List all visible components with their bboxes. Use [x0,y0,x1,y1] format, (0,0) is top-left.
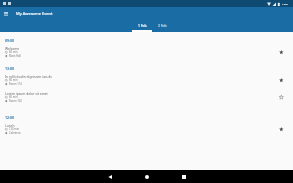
staticText: In sollicitudin dignissim iaculis [5,74,52,78]
button[interactable] [277,76,286,85]
staticText: Main Hall [9,54,21,58]
button[interactable] [277,48,286,57]
staticText: 2 Feb [158,23,167,28]
staticText: 60 min [9,50,18,54]
staticText: Lunch [5,123,15,127]
button[interactable] [277,125,286,134]
staticText: 1 Feb [138,23,147,28]
staticText: 09:00 [5,38,14,43]
button[interactable]: 2 Feb [152,19,172,32]
staticText: 60 min [9,95,18,99]
staticText: 14:01 [282,2,289,5]
staticText: My Awesome Event [16,11,53,16]
staticText: Room 102 [9,99,22,103]
button[interactable]: 1 Feb [132,19,152,32]
staticText: 12:00 [5,115,14,120]
staticText: 120 min [9,127,20,131]
button[interactable]: Lorem ipsum dolor sit amet [0,88,293,105]
staticText: Lorem ipsum dolor sit amet [5,91,48,95]
button[interactable]: Lunch [0,120,293,137]
button[interactable] [99,170,121,183]
staticText: Welcome [5,46,20,50]
staticText: 60 min [9,78,18,82]
button[interactable]: Welcome [0,43,293,60]
staticText: Cafeteria [9,131,21,135]
staticText: Room 114 [9,82,22,86]
staticText: 13:00 [5,66,14,71]
button[interactable] [0,7,12,19]
button[interactable] [136,170,158,183]
button[interactable] [277,93,286,102]
button[interactable]: In sollicitudin dignissim iaculis [0,71,293,88]
button[interactable] [173,170,195,183]
